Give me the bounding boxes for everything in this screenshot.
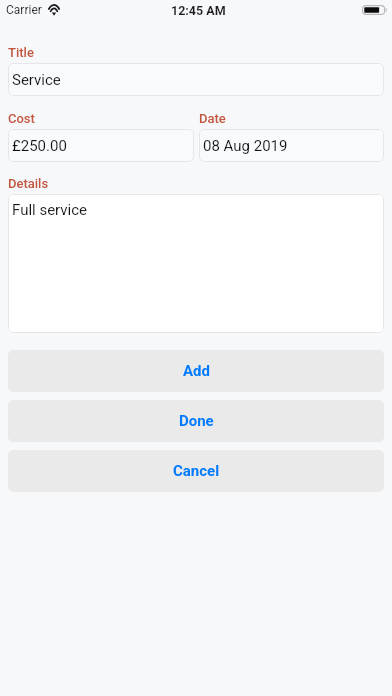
staticText: Full service [12, 201, 88, 219]
staticText: 12:45 AM [171, 3, 226, 18]
button[interactable]: Title [8, 63, 384, 96]
staticText: Done [179, 412, 214, 430]
staticText: Service [12, 71, 61, 89]
staticText: Cost [8, 111, 35, 126]
button[interactable]: Date [199, 129, 384, 162]
button[interactable]: Done [8, 400, 384, 442]
staticText: 08 Aug 2019 [203, 137, 288, 155]
staticText: Title [8, 45, 34, 60]
button[interactable]: Cancel [8, 450, 384, 492]
staticText: Details [8, 176, 49, 191]
staticText: Date [199, 111, 226, 126]
staticText: Add [183, 362, 210, 380]
staticText: Carrier [6, 3, 42, 17]
button[interactable]: Add [8, 350, 384, 392]
staticText: £250.00 [12, 137, 67, 155]
button[interactable]: Details [8, 194, 384, 333]
button[interactable]: Cost [8, 129, 194, 162]
staticText: Cancel [173, 462, 220, 480]
